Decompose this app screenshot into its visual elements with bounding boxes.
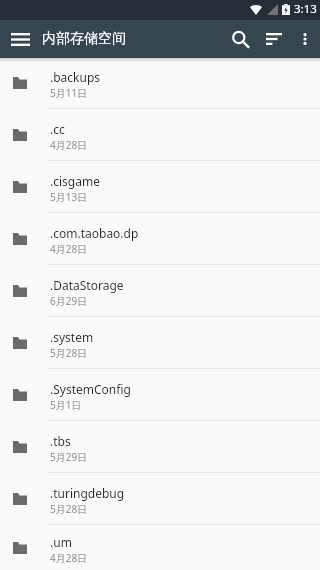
button[interactable]: .backups bbox=[0, 57, 320, 109]
button[interactable]: .DataStorage bbox=[0, 265, 320, 317]
button[interactable]: Sort bbox=[257, 20, 290, 58]
staticText: .cc bbox=[50, 121, 65, 137]
staticText: 5月29日 bbox=[50, 450, 88, 464]
staticText: .tbs bbox=[50, 433, 71, 449]
staticText: .cisgame bbox=[50, 173, 100, 189]
button[interactable]: .cisgame bbox=[0, 161, 320, 213]
staticText: 4月28日 bbox=[50, 242, 88, 256]
staticText: .um bbox=[50, 534, 72, 550]
button[interactable]: .system bbox=[0, 317, 320, 369]
button[interactable]: .cc bbox=[0, 109, 320, 161]
staticText: .com.taobao.dp bbox=[50, 225, 139, 241]
button[interactable]: More options bbox=[290, 20, 320, 58]
button[interactable]: .SystemConfig bbox=[0, 369, 320, 421]
button[interactable]: Navigation menu bbox=[0, 20, 40, 58]
staticText: .turingdebug bbox=[50, 485, 125, 501]
staticText: 内部存储空间 bbox=[42, 30, 126, 48]
staticText: 5月11日 bbox=[50, 86, 88, 100]
staticText: 3:13 bbox=[294, 1, 317, 17]
staticText: 4月28日 bbox=[50, 551, 88, 565]
staticText: 4月28日 bbox=[50, 138, 88, 152]
staticText: 5月13日 bbox=[50, 190, 88, 204]
staticText: .system bbox=[50, 329, 94, 345]
button[interactable]: .um bbox=[0, 525, 320, 570]
staticText: .DataStorage bbox=[50, 277, 124, 293]
button[interactable]: .turingdebug bbox=[0, 473, 320, 525]
staticText: 6月29日 bbox=[50, 294, 88, 308]
staticText: 5月1日 bbox=[50, 398, 82, 412]
button[interactable]: .tbs bbox=[0, 421, 320, 473]
button[interactable]: Search bbox=[224, 20, 257, 58]
staticText: 5月28日 bbox=[50, 346, 88, 360]
staticText: .backups bbox=[50, 69, 101, 85]
staticText: 5月28日 bbox=[50, 502, 88, 516]
staticText: .SystemConfig bbox=[50, 381, 131, 397]
button[interactable]: .com.taobao.dp bbox=[0, 213, 320, 265]
